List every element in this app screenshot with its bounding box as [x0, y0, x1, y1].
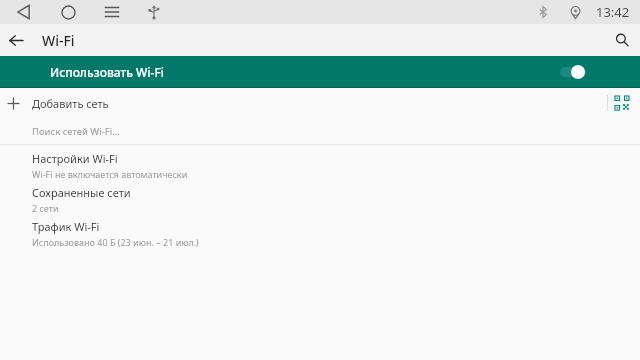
staticText: Использовано 40 Б (23 июн. – 21 июл.) — [32, 236, 199, 247]
staticText: Добавить сеть — [32, 96, 109, 111]
button[interactable]: Wi-Fi switch — [558, 63, 588, 81]
staticText: Использовать Wi-Fi — [50, 64, 165, 80]
button[interactable]: Использовать Wi-Fi — [0, 56, 640, 88]
staticText: 2 сети — [32, 202, 59, 213]
button[interactable]: Recent apps — [96, 0, 128, 24]
staticText: Трафик Wi-Fi — [32, 219, 100, 234]
button[interactable]: Добавить сеть — [0, 88, 640, 118]
button[interactable]: Search — [608, 26, 636, 54]
button[interactable]: Back — [8, 0, 40, 24]
staticText: Настройки Wi-Fi — [32, 151, 118, 166]
button[interactable]: Трафик Wi-Fi — [0, 213, 640, 247]
button[interactable]: Настройки Wi-Fi — [0, 145, 640, 179]
button[interactable]: Сохраненные сети — [0, 179, 640, 213]
staticText: Поиск сетей Wi-Fi... — [32, 125, 120, 138]
staticText: Сохраненные сети — [32, 185, 131, 200]
button[interactable]: Scan QR code — [608, 89, 636, 117]
staticText: 13:42 — [596, 3, 630, 21]
button[interactable]: Navigate up — [2, 26, 30, 54]
button[interactable]: Home — [52, 0, 84, 24]
staticText: Wi-Fi — [42, 31, 75, 50]
staticText: Wi-Fi не включается автоматически — [32, 168, 188, 179]
